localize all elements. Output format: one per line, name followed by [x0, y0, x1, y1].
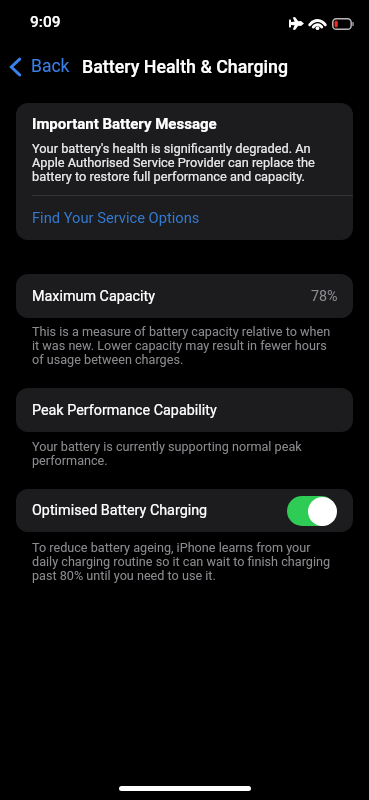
button[interactable]: Optimised Battery Charging, on	[285, 496, 337, 526]
staticText: Back	[31, 56, 70, 77]
staticText: 78%	[311, 288, 338, 305]
button[interactable]: Find Your Service Options	[16, 196, 353, 240]
staticText: Find Your Service Options	[32, 209, 200, 226]
staticText: Battery Health & Charging	[82, 56, 289, 77]
button[interactable]: Back	[0, 49, 78, 84]
staticText: To reduce battery ageing, iPhone learns …	[32, 540, 335, 583]
staticText: Peak Performance Capability	[32, 402, 217, 419]
staticText: Important Battery Message	[32, 115, 217, 133]
button[interactable]: Maximum Capacity	[16, 274, 353, 318]
staticText: This is a measure of battery capacity re…	[32, 324, 335, 367]
staticText: Your battery's health is significantly d…	[32, 141, 336, 184]
staticText: Optimised Battery Charging	[32, 502, 208, 519]
staticText: 9:09	[30, 13, 61, 31]
staticText: Your battery is currently supporting nor…	[32, 439, 335, 468]
button[interactable]: Peak Performance Capability	[16, 388, 353, 432]
staticText: Maximum Capacity	[32, 288, 156, 305]
